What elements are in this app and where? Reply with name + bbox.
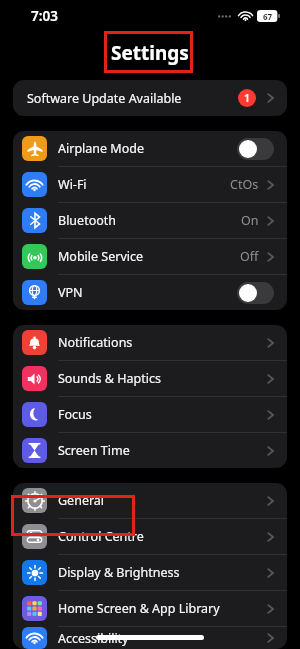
button[interactable]: Airplane Mode: [13, 131, 287, 166]
staticText: Sounds & Haptics: [58, 370, 161, 387]
staticText: Airplane Mode: [58, 140, 144, 157]
button[interactable]: Screen Time: [13, 433, 287, 468]
button[interactable]: Toggle: [237, 282, 274, 304]
button[interactable]: Focus: [13, 397, 287, 432]
staticText: Off: [240, 248, 259, 265]
staticText: General: [58, 492, 105, 509]
staticText: CtOs: [230, 176, 259, 193]
staticText: Mobile Service: [58, 248, 144, 265]
staticText: Notifications: [58, 334, 133, 351]
button[interactable]: Accessibility: [13, 627, 287, 649]
button[interactable]: Control Centre: [13, 519, 287, 554]
button[interactable]: Toggle: [237, 138, 274, 160]
button[interactable]: Bluetooth: [13, 203, 287, 238]
button[interactable]: Display & Brightness: [13, 555, 287, 590]
button[interactable]: Home Screen & App Library: [13, 591, 287, 626]
staticText: 7:03: [31, 7, 58, 25]
staticText: Home Screen & App Library: [58, 600, 220, 617]
staticText: Bluetooth: [58, 212, 117, 229]
staticText: Software Update Available: [27, 90, 182, 107]
staticText: Screen Time: [58, 442, 130, 459]
staticText: VPN: [58, 284, 83, 301]
staticText: Wi-Fi: [58, 176, 87, 193]
button[interactable]: Sounds & Haptics: [13, 361, 287, 396]
button[interactable]: Notifications: [13, 325, 287, 360]
staticText: 67: [263, 11, 273, 22]
button[interactable]: Wi-Fi: [13, 167, 287, 202]
staticText: Settings: [111, 40, 189, 66]
staticText: On: [241, 212, 259, 229]
button[interactable]: Mobile Service: [13, 239, 287, 274]
staticText: Focus: [58, 406, 92, 423]
button[interactable]: Software Update Available: [13, 80, 287, 116]
staticText: Control Centre: [58, 528, 144, 545]
staticText: Accessibility: [58, 630, 129, 647]
staticText: 1: [244, 91, 251, 105]
button[interactable]: General: [13, 483, 287, 518]
button[interactable]: VPN: [13, 275, 287, 310]
staticText: Display & Brightness: [58, 564, 180, 581]
